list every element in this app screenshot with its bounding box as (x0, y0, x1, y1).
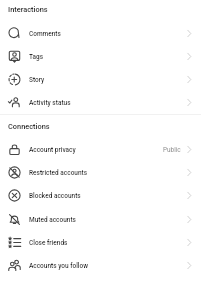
button[interactable]: Activity status (0, 91, 201, 114)
staticText: Tags (29, 53, 44, 61)
button[interactable]: Accounts you follow (0, 254, 201, 277)
button[interactable]: Tags (0, 45, 201, 68)
button[interactable]: Close friends (0, 231, 201, 254)
button[interactable]: Comments (0, 22, 201, 45)
button[interactable]: Blocked accounts (0, 184, 201, 207)
staticText: Close friends (29, 239, 68, 247)
staticText: Interactions (8, 5, 48, 14)
staticText: Story (29, 76, 45, 84)
button[interactable]: Story (0, 68, 201, 91)
staticText: Blocked accounts (29, 192, 81, 200)
staticText: Restricted accounts (29, 169, 88, 177)
staticText: Muted accounts (29, 216, 76, 224)
staticText: Account privacy (29, 146, 76, 154)
button[interactable]: Account privacy (0, 138, 201, 161)
staticText: Public (163, 146, 181, 154)
staticText: Activity status (29, 99, 71, 107)
staticText: Comments (29, 30, 61, 38)
button[interactable]: Muted accounts (0, 208, 201, 231)
button[interactable]: Restricted accounts (0, 161, 201, 184)
staticText: Connections (8, 122, 50, 131)
staticText: Accounts you follow (29, 262, 89, 270)
